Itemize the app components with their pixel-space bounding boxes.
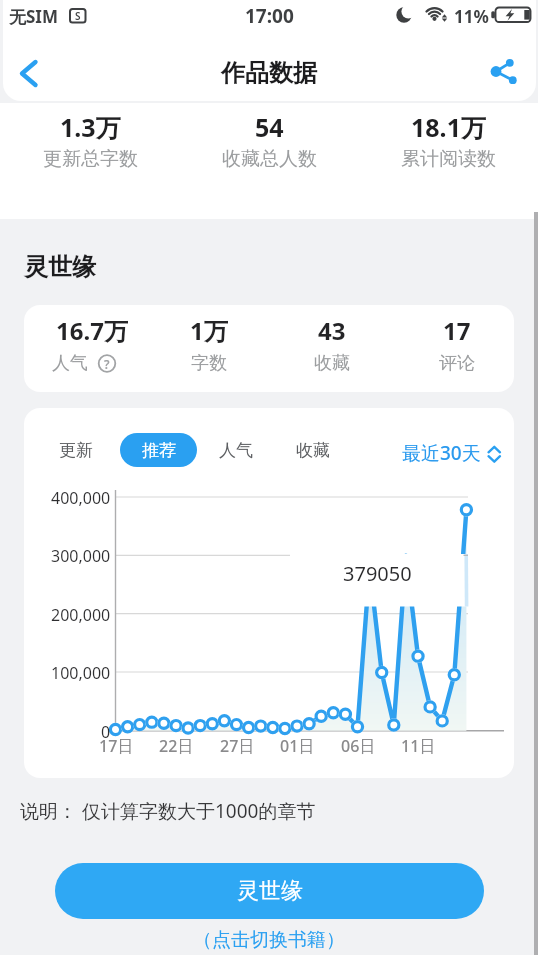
button[interactable]: 收藏 bbox=[283, 436, 343, 464]
staticText: 收藏 bbox=[314, 352, 350, 375]
staticText: 1.3万 bbox=[60, 110, 121, 140]
button[interactable]: 灵世缘 bbox=[55, 863, 484, 919]
staticText: （点击切换书籍） bbox=[193, 928, 345, 952]
staticText: 17:00 bbox=[245, 3, 294, 27]
staticText: 说明： 仅计算字数大于1000的章节 bbox=[20, 798, 316, 824]
staticText: 01日 bbox=[280, 735, 315, 757]
staticText: 18.1万 bbox=[411, 110, 486, 140]
staticText: 06日 bbox=[341, 735, 376, 757]
staticText: 400,000 bbox=[51, 487, 111, 507]
button[interactable]: 最近30天 bbox=[398, 440, 484, 464]
staticText: ? bbox=[104, 356, 110, 372]
staticText: 27日 bbox=[220, 735, 255, 757]
staticText: 17 bbox=[443, 314, 471, 344]
staticText: 16.7万 bbox=[56, 314, 128, 344]
staticText: 0 bbox=[101, 721, 111, 741]
staticText: 300,000 bbox=[51, 545, 111, 565]
staticText: 379050 bbox=[343, 560, 412, 586]
staticText: 字数 bbox=[191, 352, 227, 375]
staticText: 收藏 bbox=[296, 440, 330, 461]
staticText: 评论 bbox=[439, 352, 475, 375]
staticText: 无SIM bbox=[9, 5, 59, 25]
staticText: 更新总字数 bbox=[43, 147, 138, 171]
button[interactable]: （点击切换书籍） bbox=[0, 925, 538, 955]
staticText: 1万 bbox=[190, 314, 228, 344]
button[interactable]: 更新 bbox=[46, 436, 106, 464]
button[interactable] bbox=[482, 50, 528, 96]
staticText: S bbox=[75, 9, 81, 23]
staticText: 灵世缘 bbox=[237, 877, 303, 905]
staticText: 推荐 bbox=[142, 440, 176, 461]
staticText: 11% bbox=[454, 5, 489, 25]
staticText: 17日 bbox=[99, 735, 134, 757]
staticText: 最近30天 bbox=[402, 440, 481, 464]
button[interactable]: 人气 bbox=[206, 436, 266, 464]
staticText: 43 bbox=[318, 314, 346, 344]
staticText: 更新 bbox=[59, 440, 93, 461]
staticText: 累计阅读数 bbox=[401, 147, 496, 171]
staticText: 54 bbox=[255, 110, 284, 140]
staticText: 收藏总人数 bbox=[222, 147, 317, 171]
staticText: 200,000 bbox=[51, 604, 111, 624]
staticText: 人气 bbox=[52, 352, 88, 375]
staticText: 人气 bbox=[219, 440, 253, 461]
staticText: 100,000 bbox=[51, 662, 111, 682]
staticText: 11日 bbox=[401, 735, 436, 757]
staticText: 22日 bbox=[159, 735, 194, 757]
staticText: 灵世缘 bbox=[24, 252, 96, 282]
staticText: 作品数据 bbox=[221, 58, 317, 88]
button[interactable] bbox=[8, 50, 56, 96]
button[interactable]: 推荐 bbox=[120, 433, 197, 467]
